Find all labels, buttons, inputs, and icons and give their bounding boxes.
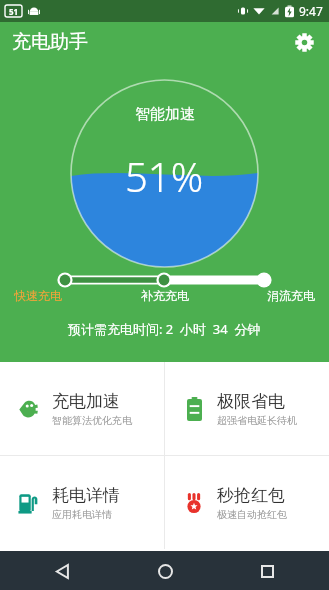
staticText: 涓流充电	[267, 288, 315, 303]
staticText: 极速自动抢红包	[217, 508, 287, 521]
button[interactable]: 充电加速	[0, 362, 164, 455]
button[interactable]: 耗电详情	[0, 456, 164, 549]
staticText: 51%	[125, 149, 204, 203]
staticText: 预计需充电时间: 2 小时 34 分钟	[68, 320, 261, 338]
staticText: 充电加速	[52, 391, 120, 412]
staticText: 9:47	[299, 3, 323, 19]
button[interactable]: Back	[45, 554, 79, 588]
staticText: 快速充电	[14, 288, 62, 303]
staticText: 智能加速	[135, 105, 195, 124]
button[interactable]: 极限省电	[165, 362, 329, 455]
staticText: 秒抢红包	[217, 485, 285, 506]
staticText: 应用耗电详情	[52, 508, 112, 521]
button[interactable]: 秒抢红包	[165, 456, 329, 549]
staticText: 智能算法优化充电	[52, 414, 132, 427]
staticText: 耗电详情	[52, 485, 120, 506]
staticText: 极限省电	[217, 391, 285, 412]
staticText: 超强省电延长待机	[217, 414, 297, 427]
staticText: 51	[9, 6, 19, 17]
staticText: 补充充电	[141, 288, 189, 303]
button[interactable]: Home	[148, 554, 182, 588]
button[interactable]: Settings	[287, 25, 321, 59]
staticText: 充电助手	[12, 30, 88, 54]
button[interactable]: Recent apps	[250, 554, 284, 588]
